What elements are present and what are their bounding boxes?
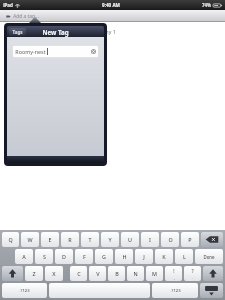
staticText: V: [96, 270, 100, 277]
button[interactable]: U: [121, 232, 139, 247]
button[interactable]: W: [21, 232, 39, 247]
staticText: D: [62, 253, 66, 260]
staticText: Roomy-nest: [15, 48, 46, 55]
button[interactable]: Hide keyboard: [200, 283, 223, 298]
staticText: New Tag: [42, 28, 69, 36]
staticText: Roomy 1: [94, 28, 116, 35]
staticText: 74%: [202, 2, 211, 8]
button[interactable]: R: [61, 232, 79, 247]
staticText: Done: [203, 254, 215, 260]
staticText: S: [43, 253, 46, 260]
staticText: 9:40 AM: [102, 2, 120, 8]
button[interactable]: Z: [25, 266, 43, 281]
staticText: Q: [8, 236, 13, 243]
staticText: C: [77, 270, 81, 277]
staticText: T: [88, 236, 92, 243]
button[interactable]: S: [35, 249, 53, 264]
button[interactable]: L: [175, 249, 193, 264]
staticText: H: [122, 253, 127, 260]
staticText: U: [128, 236, 132, 243]
staticText: P: [188, 236, 192, 243]
button[interactable]: P: [181, 232, 199, 247]
button[interactable]: H: [115, 249, 133, 264]
staticText: E: [48, 236, 52, 243]
button[interactable]: .?123: [2, 283, 47, 298]
button[interactable]: I: [141, 232, 159, 247]
button[interactable]: Tags: [9, 28, 26, 36]
staticText: X: [52, 270, 56, 277]
staticText: R: [68, 236, 72, 243]
button[interactable]: Y: [101, 232, 119, 247]
button[interactable]: E: [41, 232, 59, 247]
button[interactable]: B: [108, 266, 125, 281]
button[interactable]: M: [146, 266, 163, 281]
button[interactable]: Roomy-nest: [12, 45, 99, 58]
button[interactable]: ?: [184, 266, 201, 281]
staticText: .: [192, 275, 193, 280]
staticText: Add a tag...: [13, 13, 39, 20]
staticText: !: [173, 268, 175, 275]
button[interactable]: Clear text: [91, 49, 96, 54]
staticText: Z: [32, 270, 36, 277]
button[interactable]: Add a tag: [5, 10, 40, 22]
staticText: N: [133, 270, 138, 277]
button[interactable]: Shift: [203, 266, 223, 281]
staticText: J: [143, 253, 145, 260]
button[interactable]: .?123: [152, 283, 198, 298]
button[interactable]: C: [70, 266, 87, 281]
staticText: I: [149, 236, 151, 243]
staticText: O: [168, 236, 173, 243]
button[interactable]: Shift: [2, 266, 23, 281]
staticText: K: [162, 253, 166, 260]
staticText: Tags: [12, 29, 23, 35]
staticText: .?123: [19, 288, 30, 294]
button[interactable]: Q: [2, 232, 19, 247]
staticText: F: [83, 253, 86, 260]
button[interactable]: N: [127, 266, 144, 281]
button[interactable]: J: [135, 249, 153, 264]
button[interactable]: Backspace: [201, 232, 223, 247]
button[interactable]: X: [45, 266, 63, 281]
staticText: ,: [174, 275, 175, 280]
button[interactable]: D: [55, 249, 73, 264]
button[interactable]: V: [89, 266, 106, 281]
button[interactable]: K: [155, 249, 173, 264]
button[interactable]: !: [165, 266, 182, 281]
staticText: B: [115, 270, 119, 277]
button[interactable]: O: [161, 232, 179, 247]
staticText: M: [152, 270, 157, 277]
staticText: L: [183, 253, 186, 260]
staticText: Y: [108, 236, 112, 243]
other: Add a tag: [6, 14, 11, 19]
staticText: A: [22, 253, 26, 260]
button[interactable]: A: [15, 249, 33, 264]
button[interactable]: [49, 283, 150, 298]
button[interactable]: Done: [195, 249, 223, 264]
staticText: W: [27, 236, 33, 243]
button[interactable]: G: [95, 249, 113, 264]
button[interactable]: F: [75, 249, 93, 264]
staticText: G: [102, 253, 106, 260]
staticText: iPad: [3, 2, 13, 8]
staticText: .?123: [170, 288, 181, 294]
button[interactable]: T: [81, 232, 99, 247]
staticText: ?: [191, 268, 194, 275]
